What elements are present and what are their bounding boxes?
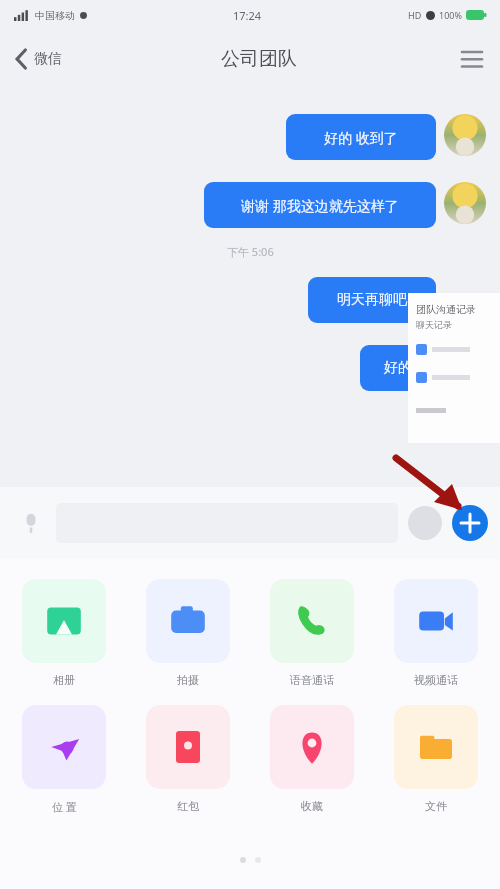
- button[interactable]: 语音通话: [270, 579, 354, 687]
- staticText: 好的: [384, 359, 412, 377]
- button[interactable]: 好的 收到了: [286, 114, 436, 160]
- button[interactable]: 红包: [146, 705, 230, 813]
- staticText: 下午 5:06: [227, 244, 274, 259]
- staticText: 收藏: [301, 799, 323, 813]
- button[interactable]: 相册: [22, 579, 106, 687]
- staticText: 拍摄: [177, 673, 199, 687]
- button[interactable]: 头像: [444, 182, 486, 224]
- staticText: 谢谢 那我这边就先这样了: [241, 196, 399, 215]
- staticText: 中国移动: [35, 9, 75, 22]
- staticText: 团队沟通记录: [416, 303, 476, 316]
- staticText: HD: [408, 9, 422, 21]
- staticText: 位 置: [52, 799, 77, 814]
- button[interactable]: 语音: [12, 504, 50, 542]
- button[interactable]: 头像: [444, 114, 486, 156]
- staticText: 明天再聊吧: [337, 291, 407, 309]
- staticText: 相册: [53, 673, 75, 687]
- button[interactable]: 更多功能: [452, 505, 488, 541]
- button[interactable]: 文件: [394, 705, 478, 813]
- button[interactable]: 谢谢 那我这边就先这样了: [204, 182, 436, 228]
- staticText: 聊天记录: [416, 319, 452, 330]
- button[interactable]: 更多: [444, 41, 500, 77]
- button[interactable]: 返回: [0, 42, 74, 76]
- staticText: 语音通话: [290, 673, 334, 687]
- button[interactable]: 视频通话: [394, 579, 478, 687]
- button[interactable]: 位 置: [22, 705, 106, 814]
- button[interactable]: 表情: [408, 506, 442, 540]
- button[interactable]: 收藏: [270, 705, 354, 813]
- staticText: 微信: [34, 50, 62, 68]
- staticText: 好的 收到了: [324, 128, 398, 147]
- staticText: 公司团队: [221, 47, 297, 71]
- staticText: 17:24: [233, 8, 262, 23]
- staticText: 文件: [425, 799, 447, 813]
- button[interactable]: 好的: [360, 345, 436, 391]
- staticText: 红包: [177, 799, 199, 813]
- staticText: 100%: [439, 9, 462, 21]
- staticText: 视频通话: [414, 673, 458, 687]
- button[interactable]: 拍摄: [146, 579, 230, 687]
- button[interactable]: 明天再聊吧: [308, 277, 436, 323]
